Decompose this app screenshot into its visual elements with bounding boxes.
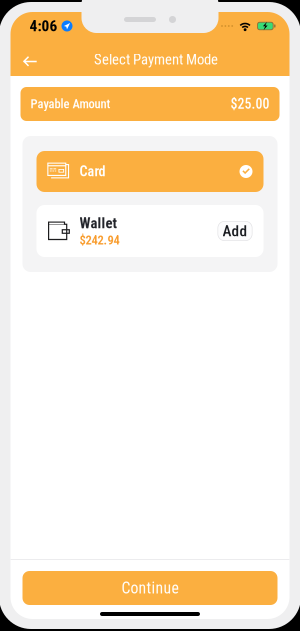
staticText: Payable Amount xyxy=(30,97,110,111)
button[interactable]: Add xyxy=(217,221,252,241)
button[interactable]: Back xyxy=(14,48,44,74)
staticText: Continue xyxy=(121,579,178,597)
staticText: 4:06 xyxy=(29,17,57,35)
button[interactable]: Card xyxy=(36,151,263,192)
button[interactable]: Continue xyxy=(22,571,277,605)
staticText: Card xyxy=(79,163,105,180)
staticText: Select Payment Mode xyxy=(94,51,218,68)
staticText: Wallet xyxy=(79,215,116,232)
staticText: $25.00 xyxy=(230,96,269,112)
staticText: $242.94 xyxy=(79,233,119,247)
staticText: Add xyxy=(222,222,247,240)
